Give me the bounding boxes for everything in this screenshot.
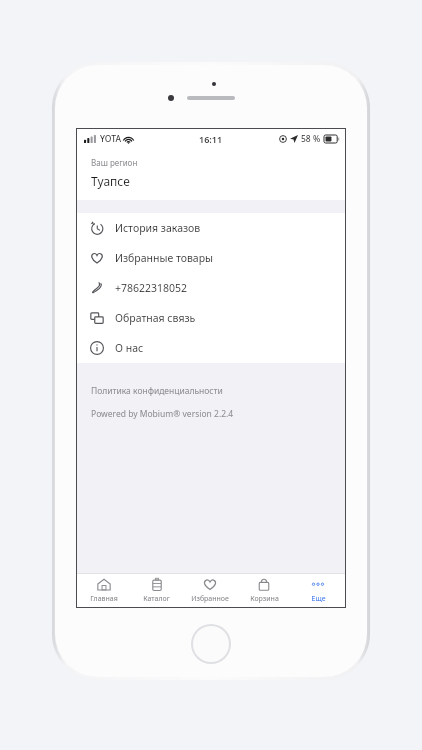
staticText: 58 % (301, 133, 321, 145)
button[interactable]: Еще (291, 574, 345, 607)
button[interactable]: Главная (77, 574, 130, 607)
button[interactable]: Избранное (183, 574, 237, 607)
button[interactable]: Ваш регион (77, 149, 345, 200)
staticText: 16:11 (199, 133, 223, 145)
staticText: Избранное (191, 594, 229, 604)
staticText: YOTA (100, 133, 121, 145)
button[interactable]: Корзина (237, 574, 291, 607)
staticText: +78622318052 (115, 281, 188, 295)
button[interactable]: О нас (77, 333, 345, 363)
staticText: Еще (311, 594, 326, 604)
staticText: Каталог (143, 594, 170, 604)
staticText: Туапсе (91, 173, 130, 189)
button[interactable]: Каталог (130, 574, 183, 607)
button[interactable]: Политика конфиденциальности (91, 385, 223, 397)
staticText: История заказов (115, 221, 201, 235)
staticText: Избранные товары (115, 251, 214, 265)
button[interactable]: Обратная связь (77, 303, 345, 333)
staticText: О нас (115, 341, 144, 355)
staticText: Корзина (250, 594, 279, 604)
staticText: Ваш регион (91, 157, 138, 168)
staticText: Powered by Mobium® version 2.2.4 (91, 408, 234, 420)
button[interactable]: +78622318052 (77, 273, 345, 303)
staticText: Главная (90, 594, 118, 604)
button[interactable]: Избранные товары (77, 243, 345, 273)
button[interactable]: История заказов (77, 213, 345, 243)
staticText: Обратная связь (115, 311, 196, 325)
